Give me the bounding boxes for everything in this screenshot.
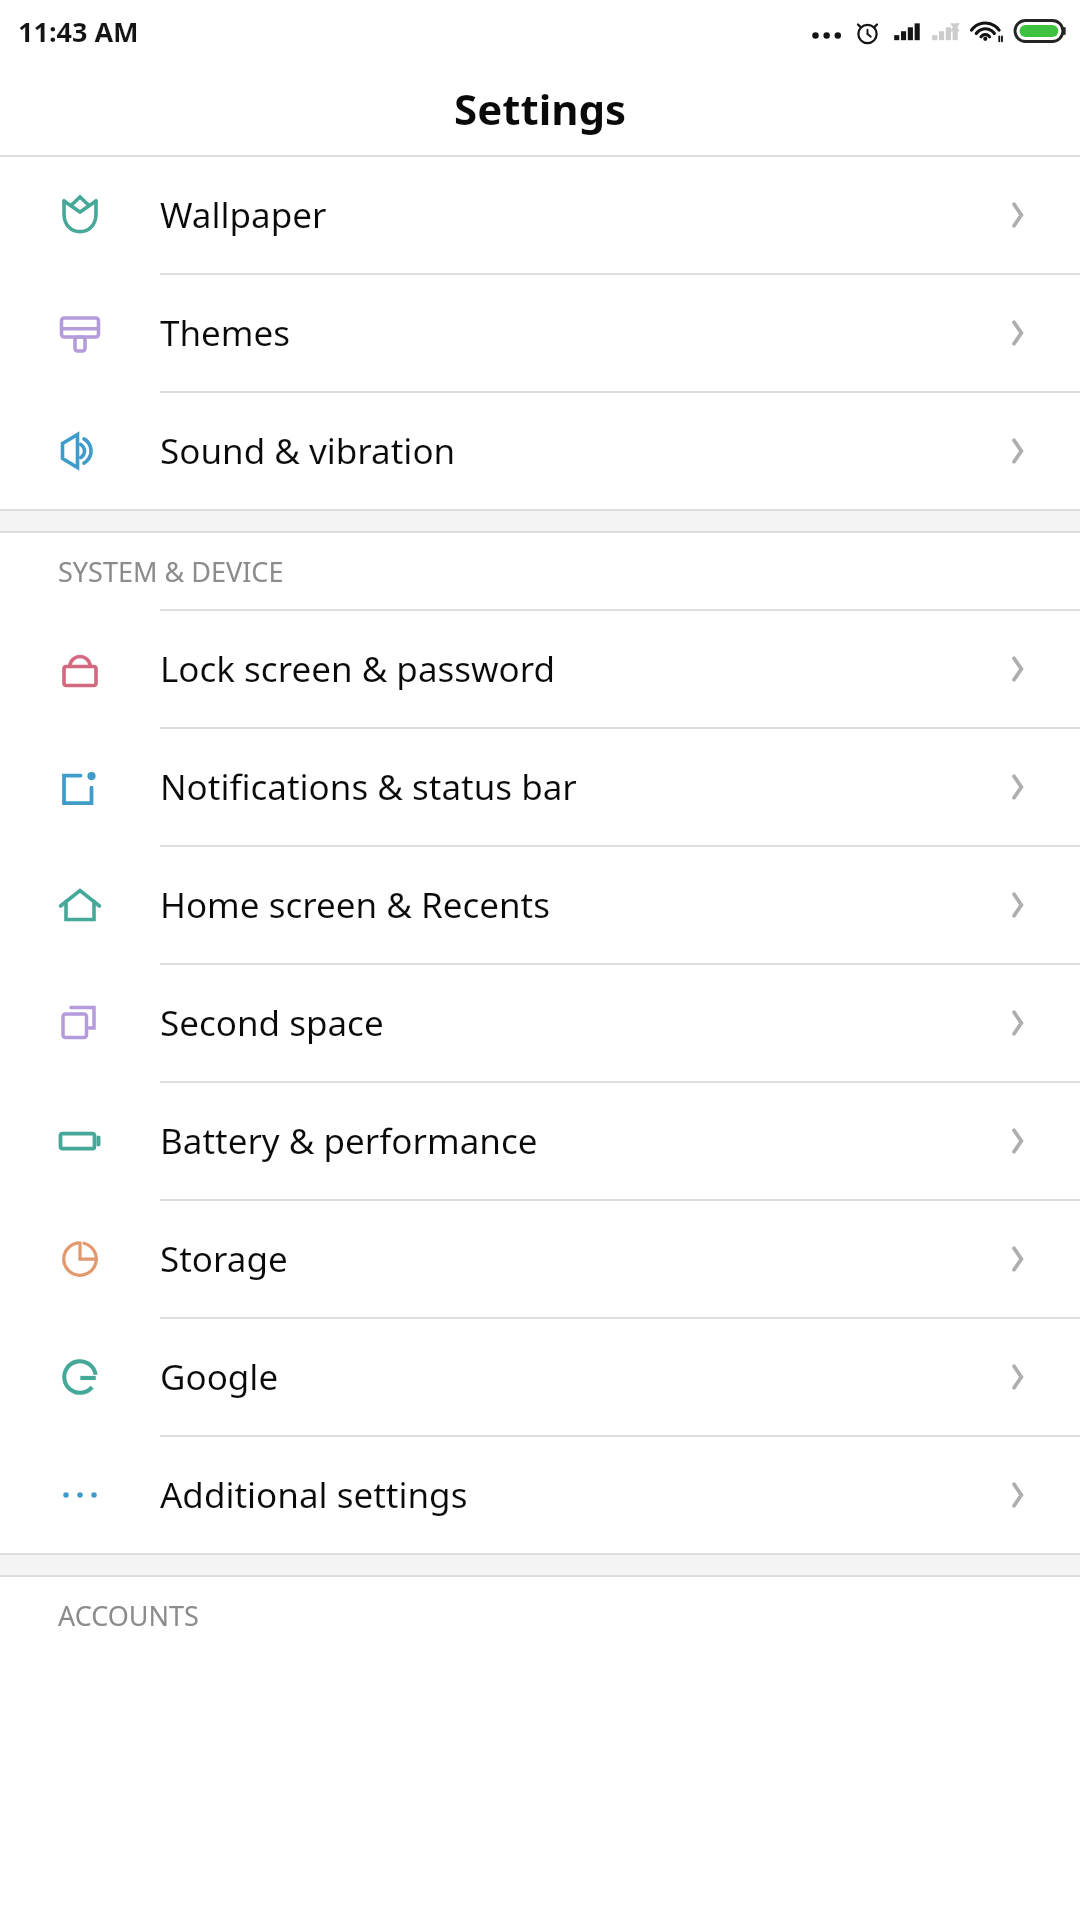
staticText: Lock screen & password [160,645,998,693]
button[interactable]: Themes [0,275,1080,391]
staticText: Additional settings [160,1471,998,1519]
staticText: Google [160,1353,998,1401]
staticText: Storage [160,1235,998,1283]
staticText: Home screen & Recents [160,881,998,929]
staticText: Battery & performance [160,1117,998,1165]
button[interactable]: Lock screen and password [0,611,1080,727]
button[interactable]: Wallpaper [0,157,1080,273]
button[interactable]: Home screen and Recents [0,847,1080,963]
staticText: ACCOUNTS [58,1597,199,1634]
button[interactable]: Additional settings [0,1437,1080,1553]
staticText: Sound & vibration [160,427,998,475]
staticText: SYSTEM & DEVICE [58,553,284,590]
staticText: Wallpaper [160,191,998,239]
button[interactable]: Storage [0,1201,1080,1317]
staticText: Themes [160,309,998,357]
button[interactable]: Notifications and status bar [0,729,1080,845]
staticText: Settings [454,80,627,137]
staticText: Notifications & status bar [160,763,998,811]
staticText: 11:43 AM [18,13,139,50]
button[interactable]: Google [0,1319,1080,1435]
button[interactable]: Second space [0,965,1080,1081]
button[interactable]: Sound and vibration [0,393,1080,509]
button[interactable]: Battery and performance [0,1083,1080,1199]
staticText: Second space [160,999,998,1047]
